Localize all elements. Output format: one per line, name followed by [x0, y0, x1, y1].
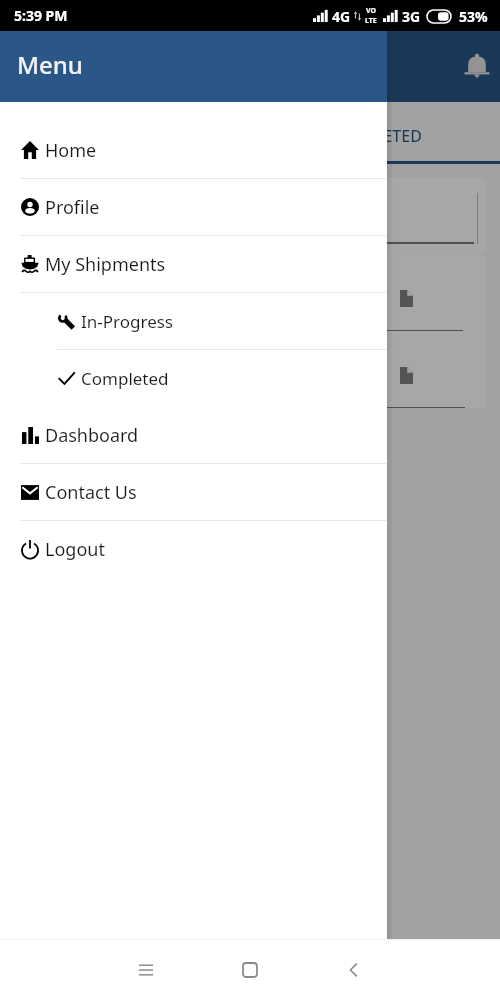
- staticText: 53%: [459, 7, 488, 26]
- button[interactable]: [13, 254, 487, 330]
- staticText: 5:39 PM: [14, 6, 68, 25]
- staticText: 4G: [332, 7, 351, 26]
- button[interactable]: [13, 331, 487, 407]
- button[interactable]: Home: [0, 122, 387, 178]
- staticText: Completed: [81, 367, 169, 390]
- button[interactable]: Home: [227, 947, 273, 993]
- staticText: VO: [366, 6, 377, 16]
- button[interactable]: In-Progress: [0, 293, 387, 349]
- staticText: In-Progress: [81, 310, 174, 333]
- staticText: Dashboard: [45, 423, 139, 448]
- staticText: Home: [45, 138, 97, 163]
- button[interactable]: Contact Us: [0, 464, 387, 520]
- button[interactable]: Completed: [0, 350, 387, 406]
- button[interactable]: Profile: [0, 179, 387, 235]
- staticText: Contact Us: [45, 480, 137, 505]
- staticText: Profile: [45, 195, 100, 220]
- staticText: My Shipments: [45, 252, 166, 277]
- button[interactable]: Logout: [0, 521, 387, 577]
- button[interactable]: Recent apps: [123, 947, 169, 993]
- button[interactable]: My Shipments: [0, 236, 387, 292]
- staticText: Logout: [45, 537, 105, 562]
- button[interactable]: Dashboard: [0, 407, 387, 463]
- button[interactable]: Notifications: [455, 45, 499, 89]
- staticText: 3G: [402, 7, 421, 26]
- button[interactable]: [13, 178, 487, 253]
- staticText: COMPLETED: [328, 125, 422, 147]
- staticText: Menu: [17, 48, 83, 81]
- button[interactable]: Back: [331, 947, 377, 993]
- staticText: LTE: [365, 16, 377, 26]
